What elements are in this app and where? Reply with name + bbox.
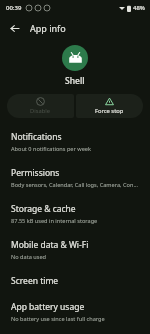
staticText: No data used: [11, 253, 47, 261]
staticText: Disable: [30, 107, 51, 115]
button[interactable]: Permissions: [0, 160, 150, 196]
staticText: Screen time: [11, 275, 59, 287]
button[interactable]: App battery usage: [0, 294, 150, 330]
staticText: Force stop: [95, 107, 124, 115]
staticText: Storage & cache: [11, 203, 76, 215]
staticText: 00:39: [6, 4, 22, 12]
button[interactable]: Disable: [7, 94, 74, 118]
button[interactable]: Mobile data & Wi-Fi: [0, 232, 150, 268]
button[interactable]: Notifications: [0, 124, 150, 160]
staticText: Shell: [65, 75, 85, 87]
button[interactable]: Back: [5, 19, 23, 37]
staticText: Body sensors, Calendar, Call logs, Camer…: [11, 181, 139, 189]
button[interactable]: Screen time: [0, 268, 150, 294]
staticText: App info: [30, 22, 66, 34]
staticText: 87.55 kB used in internal storage: [11, 217, 98, 225]
staticText: About 0 notifications per week: [11, 145, 91, 153]
button[interactable]: Storage & cache: [0, 196, 150, 232]
staticText: Mobile data & Wi-Fi: [11, 239, 89, 251]
staticText: 48%: [133, 4, 145, 12]
staticText: No battery use since last full charge: [11, 315, 105, 323]
staticText: App battery usage: [11, 301, 85, 313]
staticText: Permissions: [11, 167, 60, 179]
staticText: Notifications: [11, 131, 62, 143]
button[interactable]: Force stop: [76, 94, 143, 118]
